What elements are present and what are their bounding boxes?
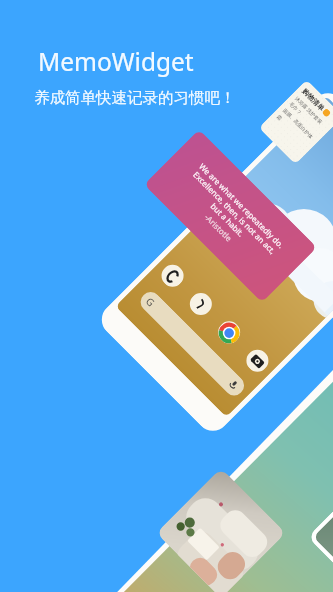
staticText: 养成简单快速记录的习惯吧！ <box>34 88 236 108</box>
staticText: We are what we repeatedly do. Excellence… <box>183 160 287 264</box>
staticText: MemoWidget <box>38 45 194 78</box>
staticText: 购物清单 <box>300 87 326 113</box>
staticText: 沐浴露 洗护套装 毛巾？ 面膜、高蛋白护体霜 <box>275 95 329 149</box>
staticText: -Aristotle <box>203 211 235 244</box>
staticText: G <box>143 294 158 310</box>
